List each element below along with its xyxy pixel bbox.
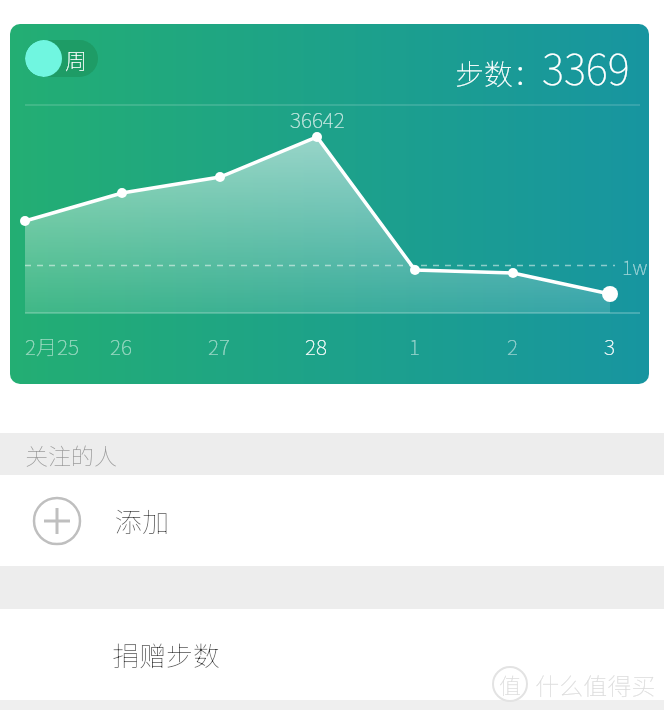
- staticText: 步数：3369: [455, 36, 630, 97]
- staticText: 2: [507, 331, 518, 361]
- staticText: 28: [305, 331, 327, 361]
- staticText: 值: [499, 668, 522, 700]
- staticText: 什么值得买: [530, 667, 656, 702]
- staticText: 36642: [290, 104, 345, 134]
- staticText: 周: [65, 43, 88, 75]
- staticText: 2月25: [25, 331, 79, 361]
- staticText: 26: [110, 331, 132, 361]
- button[interactable]: 添加: [0, 475, 664, 566]
- button[interactable]: 捐赠步数: [0, 609, 664, 700]
- button[interactable]: 周: [25, 40, 98, 77]
- staticText: 捐赠步数: [112, 635, 220, 674]
- staticText: 1w: [622, 252, 648, 281]
- staticText: 27: [208, 331, 230, 361]
- staticText: 关注的人: [25, 438, 117, 471]
- staticText: 添加: [115, 501, 169, 540]
- staticText: 1: [409, 331, 420, 361]
- staticText: 3: [604, 331, 615, 361]
